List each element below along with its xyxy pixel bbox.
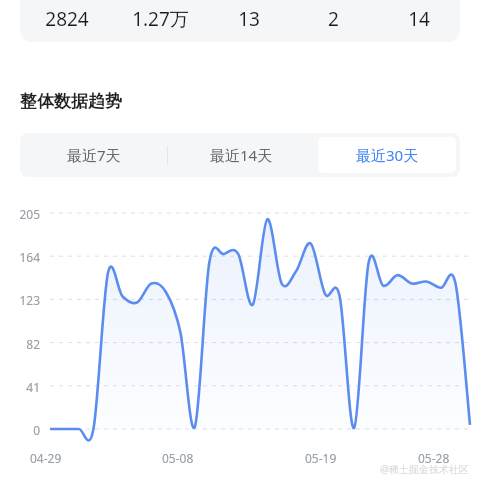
button[interactable]: 14 <box>377 6 460 32</box>
button[interactable]: 最近30天 <box>318 137 456 173</box>
button[interactable]: 2824 <box>20 0 460 42</box>
staticText: 05-08 <box>162 450 194 466</box>
staticText: 2 <box>328 6 339 32</box>
staticText: 04-29 <box>30 450 62 466</box>
staticText: @稀土掘金技术社区 <box>380 462 469 476</box>
staticText: 整体数据趋势 <box>20 91 122 112</box>
staticText: 123 <box>2 292 40 308</box>
staticText: 05-28 <box>418 450 450 466</box>
staticText: 82 <box>2 336 40 352</box>
button[interactable]: 13 <box>207 6 290 32</box>
staticText: 最近30天 <box>356 145 419 165</box>
staticText: 41 <box>2 379 40 395</box>
staticText: 1.27万 <box>132 6 189 32</box>
staticText: 13 <box>238 6 260 32</box>
staticText: 0 <box>2 422 40 438</box>
button[interactable]: 1.27万 <box>113 6 207 32</box>
button[interactable]: 最近14天 <box>172 137 310 173</box>
staticText: 最近7天 <box>67 145 121 165</box>
staticText: 05-19 <box>305 450 337 466</box>
staticText: 最近14天 <box>210 145 273 165</box>
staticText: 205 <box>2 206 40 222</box>
staticText: 164 <box>2 249 40 265</box>
staticText: 14 <box>408 6 430 32</box>
button[interactable]: 2 <box>290 6 377 32</box>
button[interactable]: 2824 <box>20 6 113 32</box>
button[interactable]: 最近7天 <box>24 137 163 173</box>
staticText: 2824 <box>45 6 89 32</box>
